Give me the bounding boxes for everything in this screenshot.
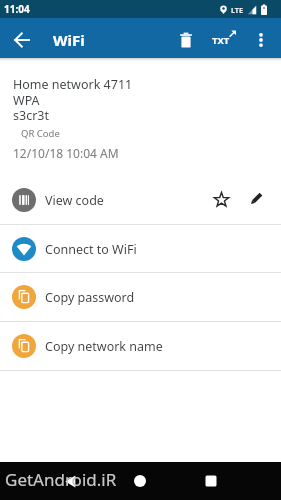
button[interactable]: TXT bbox=[208, 23, 242, 57]
button[interactable] bbox=[54, 465, 86, 497]
button[interactable] bbox=[206, 184, 236, 214]
button[interactable] bbox=[195, 465, 227, 497]
button[interactable] bbox=[171, 25, 201, 55]
button[interactable]: View code bbox=[0, 176, 281, 224]
staticText: TXT bbox=[212, 34, 230, 47]
button[interactable] bbox=[124, 465, 156, 497]
staticText: 11:04 bbox=[4, 2, 30, 16]
button[interactable] bbox=[241, 183, 271, 213]
staticText: Connect to WiFi bbox=[45, 241, 137, 258]
button[interactable]: Connect to WiFi bbox=[0, 225, 281, 273]
staticText: QR Code bbox=[21, 127, 60, 140]
button[interactable] bbox=[6, 24, 38, 56]
button[interactable]: Copy network name bbox=[0, 322, 281, 370]
button[interactable]: Copy password bbox=[0, 273, 281, 321]
staticText: LTE bbox=[231, 5, 244, 15]
staticText: GetAndroid.iR bbox=[5, 468, 117, 491]
staticText: Home network 4711 WPA s3cr3t bbox=[13, 76, 133, 123]
staticText: Copy password bbox=[45, 289, 135, 306]
staticText: WiFi bbox=[53, 30, 85, 50]
button[interactable] bbox=[247, 26, 275, 54]
staticText: 12/10/18 10:04 AM bbox=[13, 145, 119, 161]
staticText: View code bbox=[45, 192, 104, 209]
staticText: Copy network name bbox=[45, 338, 163, 355]
